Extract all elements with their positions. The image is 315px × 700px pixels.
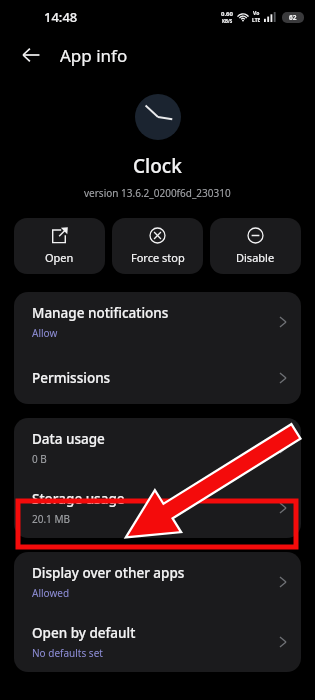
staticText: 20.1 MB <box>32 512 71 526</box>
staticText: App info <box>60 44 128 67</box>
staticText: Data usage <box>32 430 105 448</box>
staticText: KB/S <box>222 18 233 24</box>
staticText: Display over other apps <box>32 564 185 582</box>
staticText: 0 B <box>32 452 47 466</box>
staticText: 14:48 <box>44 8 78 26</box>
button[interactable]: Back <box>14 38 48 72</box>
staticText: Force stop <box>131 250 185 265</box>
button[interactable]: Disable <box>210 218 301 274</box>
button[interactable]: Display over other apps <box>14 552 301 612</box>
button[interactable]: Manage notifications <box>14 292 301 352</box>
button[interactable]: Storage usage <box>14 478 301 538</box>
staticText: Disable <box>236 250 275 265</box>
button[interactable]: Open by default <box>14 612 301 672</box>
button[interactable]: Permissions <box>14 352 301 404</box>
staticText: version 13.6.2_0200f6d_230310 <box>84 186 231 200</box>
staticText: Clock <box>133 153 182 179</box>
staticText: Allowed <box>32 586 70 600</box>
button[interactable]: Open <box>14 218 105 274</box>
staticText: Open by default <box>32 624 136 642</box>
staticText: Open <box>45 250 74 265</box>
staticText: 62 <box>289 13 297 22</box>
staticText: 0.60 <box>221 10 233 18</box>
staticText: No defaults set <box>32 646 103 660</box>
button[interactable]: Data usage <box>14 418 301 478</box>
staticText: Permissions <box>32 369 111 387</box>
button[interactable]: Force stop <box>112 218 203 274</box>
staticText: Manage notifications <box>32 304 169 322</box>
staticText: Vo <box>253 10 260 17</box>
staticText: Storage usage <box>32 490 125 508</box>
staticText: Allow <box>32 326 58 340</box>
staticText: LTE <box>252 17 261 24</box>
